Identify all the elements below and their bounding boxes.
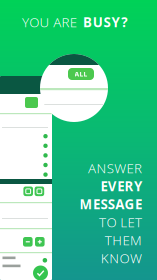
staticText: ANSWER <box>88 159 142 177</box>
staticText: MESSAGE <box>80 195 142 213</box>
staticText: YOU ARE <box>22 13 77 31</box>
staticText: EVERY <box>100 177 142 195</box>
staticText: TO LET <box>99 213 142 231</box>
staticText: THEM <box>105 231 142 249</box>
staticText: KNOW <box>101 249 142 267</box>
staticText: ALL <box>74 70 87 78</box>
staticText: BUSY? <box>83 13 127 31</box>
